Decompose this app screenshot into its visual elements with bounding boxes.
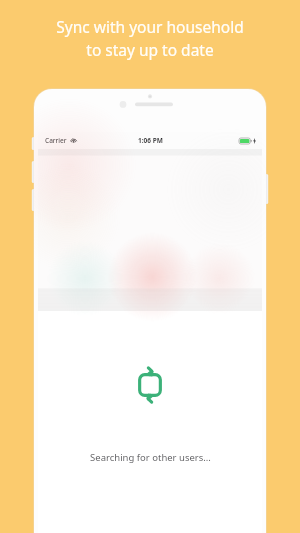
staticText: Searching for other users... [90, 451, 211, 464]
staticText: Carrier [45, 136, 67, 145]
button[interactable]: Syncing [135, 370, 165, 400]
staticText: to stay up to date [86, 39, 214, 60]
staticText: Sync with your household [56, 16, 244, 37]
staticText: 1:06 PM [138, 136, 163, 145]
